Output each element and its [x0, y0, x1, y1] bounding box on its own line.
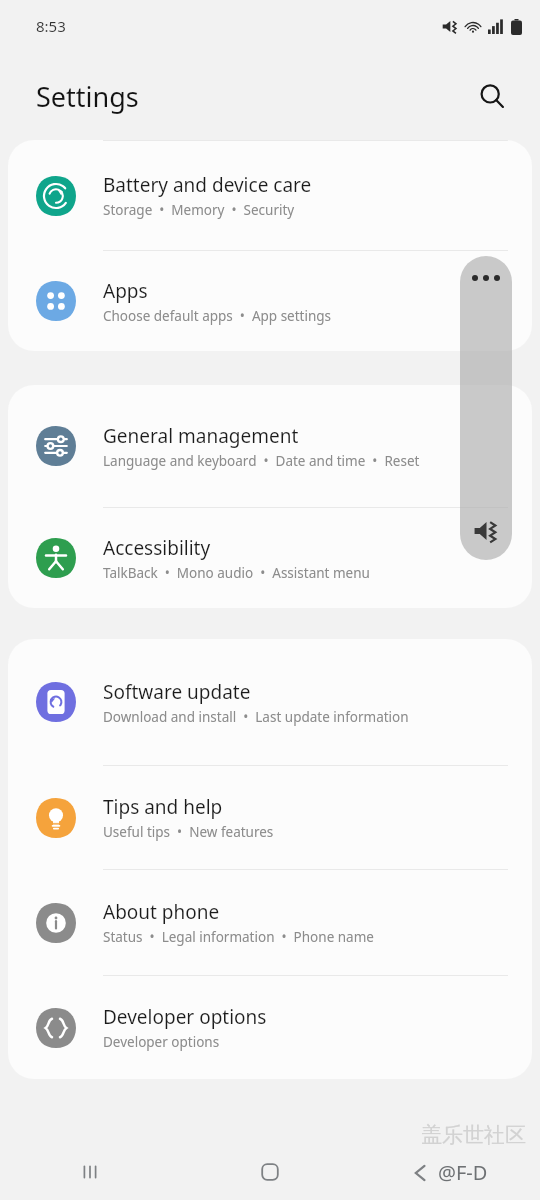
staticText: General management	[103, 423, 299, 449]
staticText: @F-D	[438, 1159, 488, 1186]
staticText: Download and install • Last update infor…	[103, 708, 409, 726]
button[interactable]: Floating controls	[460, 256, 512, 560]
staticText: 盖乐世社区	[421, 1122, 526, 1148]
button[interactable]: Accessibility	[8, 508, 532, 608]
staticText: Storage • Memory • Security	[103, 201, 295, 219]
staticText: Language and keyboard • Date and time • …	[103, 452, 420, 470]
staticText: Useful tips • New features	[103, 823, 274, 841]
staticText: Battery and device care	[103, 172, 312, 198]
staticText: Accessibility	[103, 535, 211, 561]
button[interactable]: Apps	[8, 251, 532, 351]
staticText: 8:53	[36, 16, 66, 36]
button[interactable]: Battery and device care	[8, 141, 532, 250]
button[interactable]: Search	[470, 74, 514, 118]
button[interactable]: Back	[360, 1144, 540, 1200]
staticText: Tips and help	[103, 794, 223, 820]
button[interactable]: About phone	[8, 870, 532, 975]
staticText: Software update	[103, 679, 251, 705]
staticText: Settings	[36, 78, 139, 115]
staticText: Status • Legal information • Phone name	[103, 928, 374, 946]
button[interactable]: Recent apps	[0, 1144, 180, 1200]
staticText: TalkBack • Mono audio • Assistant menu	[103, 564, 370, 582]
staticText: Developer options	[103, 1004, 267, 1030]
button[interactable]: Home	[180, 1144, 360, 1200]
button[interactable]: Software update	[8, 639, 532, 765]
staticText: Choose default apps • App settings	[103, 307, 332, 325]
button[interactable]: General management	[8, 385, 532, 507]
button[interactable]: Tips and help	[8, 766, 532, 869]
staticText: Developer options	[103, 1033, 220, 1051]
staticText: About phone	[103, 899, 220, 925]
staticText: Apps	[103, 278, 148, 304]
button[interactable]: Developer options	[8, 976, 532, 1079]
